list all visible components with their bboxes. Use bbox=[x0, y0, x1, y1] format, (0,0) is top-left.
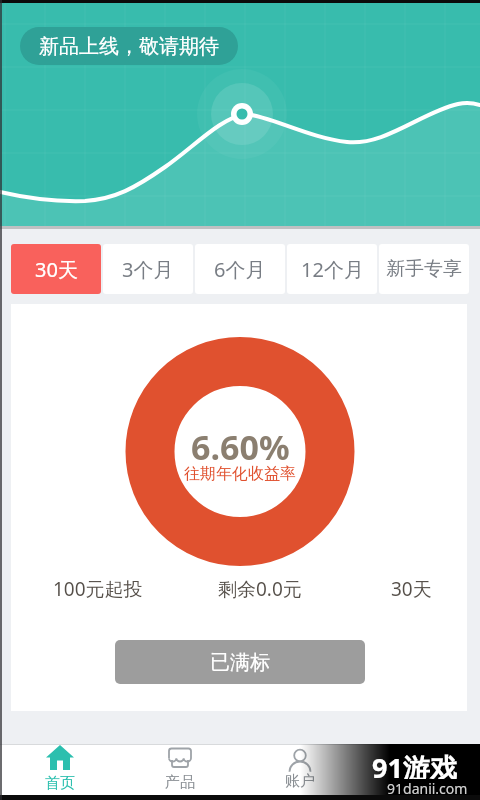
staticText: 3个月 bbox=[122, 256, 174, 283]
staticText: 30天 bbox=[391, 576, 432, 600]
staticText: 产品 bbox=[165, 773, 195, 792]
staticText: 剩余0.0元 bbox=[218, 576, 302, 600]
button[interactable]: 新手专享 bbox=[379, 244, 469, 294]
staticText: 12个月 bbox=[301, 256, 364, 283]
button[interactable]: 已满标 bbox=[115, 640, 365, 684]
button[interactable]: 3个月 bbox=[103, 244, 193, 294]
staticText: 6个月 bbox=[214, 256, 266, 283]
staticText: 往期年化收益率 bbox=[184, 464, 296, 484]
staticText: 新品上线，敬请期待 bbox=[39, 34, 219, 59]
staticText: 已满标 bbox=[210, 650, 270, 675]
staticText: 91danji.com bbox=[387, 779, 468, 794]
staticText: 6.60% bbox=[191, 424, 290, 464]
staticText: 30天 bbox=[35, 256, 78, 283]
button[interactable]: 6个月 bbox=[195, 244, 285, 294]
staticText: 100元起投 bbox=[53, 576, 143, 600]
button[interactable]: 30天 bbox=[11, 244, 101, 294]
staticText: 账户 bbox=[285, 772, 315, 791]
staticText: 新手专享 bbox=[386, 257, 462, 281]
button[interactable]: 12个月 bbox=[287, 244, 377, 294]
staticText: 首页 bbox=[45, 774, 75, 793]
button[interactable]: 账户 bbox=[270, 745, 330, 795]
button[interactable]: 新品上线，敬请期待 bbox=[20, 27, 238, 65]
button[interactable]: 首页 bbox=[30, 745, 90, 795]
button[interactable]: 产品 bbox=[150, 745, 210, 795]
staticText: 91游戏 bbox=[372, 749, 457, 779]
